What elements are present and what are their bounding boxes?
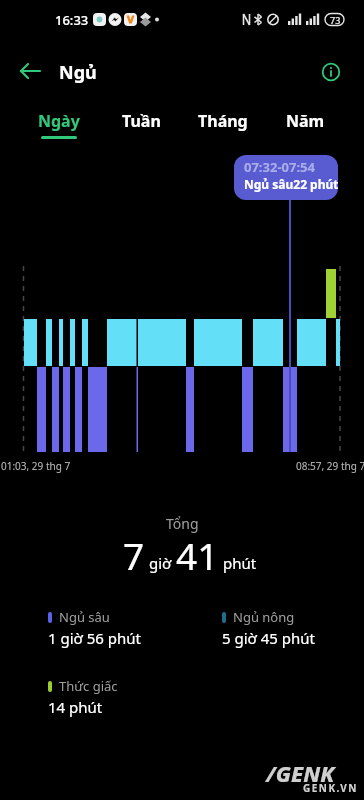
staticText: 08:57, 29 thg 7 — [296, 459, 364, 473]
staticText: Ngày — [38, 110, 80, 132]
staticText: Thức giấc — [59, 677, 118, 695]
button[interactable]: Tuần — [100, 103, 182, 139]
staticText: Ngủ sâu22 phút — [244, 176, 338, 192]
button[interactable]: Tháng — [182, 103, 264, 139]
staticText: Tổng — [166, 514, 199, 533]
staticText: 41 — [176, 530, 219, 578]
staticText: 73 — [330, 14, 341, 26]
staticText: /GENK — [266, 758, 335, 788]
staticText: Năm — [286, 110, 325, 132]
staticText: GENK.VN — [303, 781, 358, 795]
button[interactable]: Ngày — [18, 103, 100, 139]
staticText: 01:03, 29 thg 7 — [1, 459, 71, 473]
staticText: 07:32-07:54 — [244, 158, 315, 176]
staticText: 1 giờ 56 phút — [48, 628, 141, 648]
staticText: Ngủ nông — [233, 608, 295, 626]
staticText: Ngủ — [59, 60, 97, 85]
staticText: Tuần — [122, 110, 161, 132]
staticText: 5 giờ 45 phút — [222, 628, 315, 648]
button[interactable] — [315, 56, 347, 88]
staticText: Ngủ sâu — [59, 608, 110, 626]
button[interactable]: Năm — [264, 103, 346, 139]
button[interactable] — [10, 55, 54, 89]
staticText: 16:33 — [55, 11, 89, 29]
staticText: 14 phút — [48, 697, 103, 717]
staticText: phút — [223, 553, 257, 573]
staticText: Tháng — [198, 110, 248, 132]
staticText: 7 — [123, 530, 145, 578]
staticText: giờ — [149, 553, 172, 573]
